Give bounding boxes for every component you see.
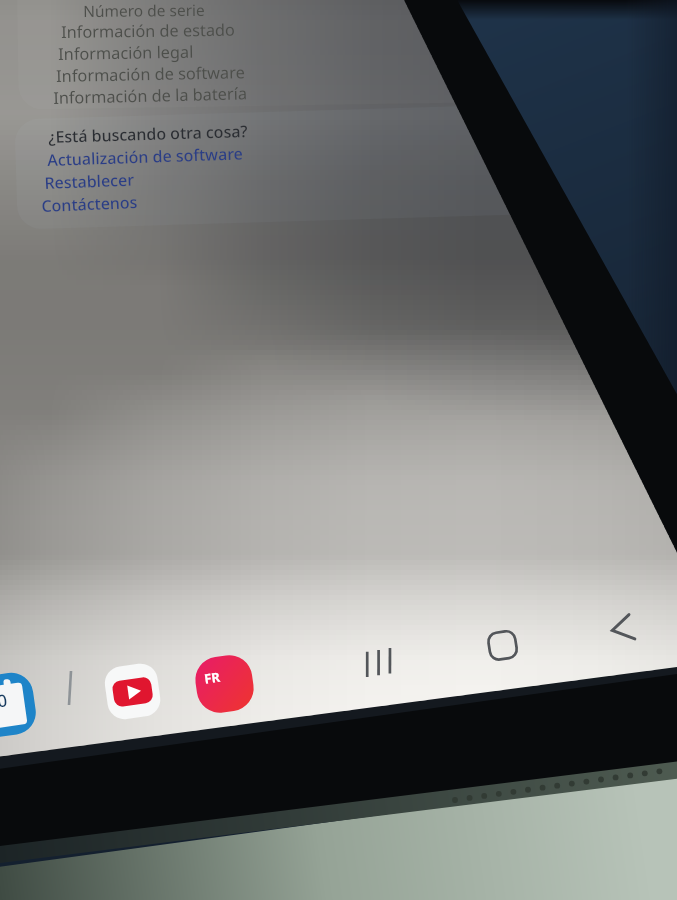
staticText: Información de software xyxy=(56,61,245,87)
staticText: Número de serie xyxy=(83,0,205,21)
staticText: Restablecer xyxy=(44,169,135,194)
staticText: ¿Está buscando otra cosa? xyxy=(48,120,249,148)
staticText: Información de estado xyxy=(61,19,235,43)
staticText: Información legal xyxy=(58,41,194,65)
staticText: Actualización de software xyxy=(47,142,244,171)
staticText: Contáctenos xyxy=(41,191,139,217)
staticText: Información de la batería xyxy=(53,82,247,109)
staticText: FR xyxy=(203,668,221,688)
staticText: 10 xyxy=(0,688,9,714)
